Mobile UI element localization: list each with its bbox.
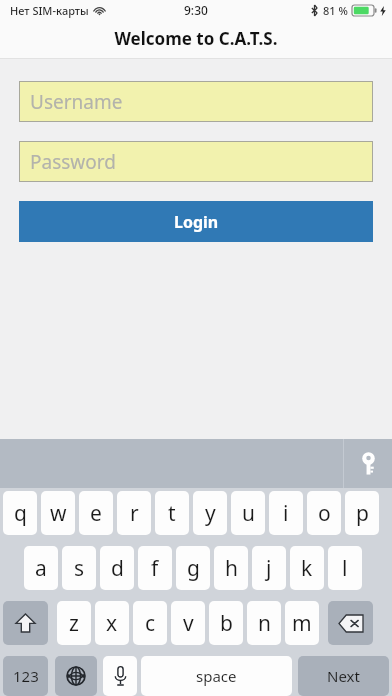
staticText: c — [145, 609, 156, 638]
staticText: m — [292, 609, 312, 638]
staticText: d — [111, 554, 124, 583]
button[interactable]: c — [133, 601, 167, 645]
staticText: u — [242, 499, 255, 528]
button[interactable]: d — [100, 546, 134, 590]
staticText: Welcome to C.A.T.S. — [0, 27, 392, 50]
button[interactable]: t — [155, 491, 189, 535]
button[interactable]: Backspace — [328, 601, 373, 645]
button[interactable]: Password — [19, 141, 373, 182]
staticText: z — [69, 609, 79, 638]
button[interactable]: Next — [298, 656, 389, 696]
staticText: o — [318, 499, 331, 528]
staticText: b — [220, 609, 233, 638]
staticText: a — [35, 554, 47, 583]
button[interactable]: Dictation — [103, 656, 137, 696]
button[interactable]: l — [328, 546, 362, 590]
button[interactable]: n — [247, 601, 281, 645]
button[interactable]: y — [193, 491, 227, 535]
staticText: space — [196, 666, 237, 686]
button[interactable]: z — [57, 601, 91, 645]
staticText: Password — [30, 149, 116, 175]
button[interactable]: Change keyboard — [55, 656, 97, 696]
staticText: k — [301, 554, 313, 583]
button[interactable]: o — [307, 491, 341, 535]
button[interactable]: h — [214, 546, 248, 590]
staticText: v — [183, 609, 194, 638]
button[interactable]: g — [176, 546, 210, 590]
button[interactable]: i — [269, 491, 303, 535]
staticText: 9:30 — [184, 2, 208, 18]
staticText: j — [266, 554, 272, 583]
staticText: Next — [327, 666, 360, 686]
button[interactable]: Shift — [3, 601, 48, 645]
staticText: 81 % — [323, 3, 348, 18]
button[interactable]: a — [24, 546, 58, 590]
staticText: w — [50, 499, 67, 528]
staticText: x — [106, 609, 118, 638]
staticText: q — [14, 499, 27, 528]
button[interactable]: b — [209, 601, 243, 645]
staticText: y — [205, 499, 216, 528]
button[interactable]: v — [171, 601, 205, 645]
button[interactable]: p — [345, 491, 379, 535]
staticText: Login — [174, 211, 219, 233]
button[interactable]: m — [285, 601, 319, 645]
button[interactable]: s — [62, 546, 96, 590]
button[interactable]: Passwords — [344, 439, 392, 488]
button[interactable]: Username — [19, 81, 373, 122]
button[interactable]: k — [290, 546, 324, 590]
staticText: e — [90, 499, 102, 528]
button[interactable]: space — [141, 656, 292, 696]
staticText: s — [74, 554, 85, 583]
staticText: i — [283, 499, 289, 528]
staticText: l — [342, 554, 348, 583]
button[interactable]: 123 — [3, 656, 48, 696]
staticText: p — [356, 499, 369, 528]
button[interactable]: w — [41, 491, 75, 535]
button[interactable]: j — [252, 546, 286, 590]
staticText: Username — [30, 89, 123, 115]
staticText: h — [225, 554, 238, 583]
button[interactable]: q — [3, 491, 37, 535]
staticText: n — [258, 609, 271, 638]
staticText: t — [168, 499, 176, 528]
button[interactable]: Login — [19, 201, 373, 242]
button[interactable]: r — [117, 491, 151, 535]
button[interactable]: x — [95, 601, 129, 645]
button[interactable]: f — [138, 546, 172, 590]
staticText: g — [187, 554, 200, 583]
staticText: r — [130, 499, 139, 528]
staticText: 123 — [13, 666, 39, 686]
button[interactable]: u — [231, 491, 265, 535]
staticText: Нет SIM-карты — [10, 3, 89, 18]
button[interactable]: e — [79, 491, 113, 535]
staticText: f — [151, 554, 159, 583]
